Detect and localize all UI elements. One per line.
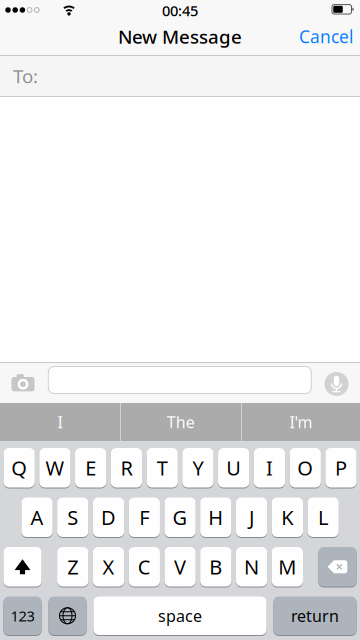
button[interactable]: U xyxy=(218,447,249,488)
staticText: I xyxy=(57,411,62,433)
button[interactable]: J xyxy=(236,497,267,537)
staticText: O xyxy=(297,454,313,481)
staticText: L xyxy=(318,504,328,531)
staticText: B xyxy=(209,553,222,580)
staticText: Z xyxy=(67,553,78,580)
button[interactable]: Y xyxy=(182,447,214,488)
staticText: X xyxy=(103,553,115,580)
staticText: S xyxy=(67,504,78,531)
button[interactable]: W xyxy=(39,447,71,488)
button[interactable]: V xyxy=(164,546,196,587)
button[interactable]: space xyxy=(93,596,267,635)
button[interactable]: Next Keyboard xyxy=(48,596,87,635)
button[interactable]: K xyxy=(272,497,303,537)
button[interactable]: E xyxy=(75,447,106,488)
button[interactable]: I xyxy=(1,403,119,441)
button[interactable]: S xyxy=(57,497,88,537)
button[interactable]: Delete xyxy=(318,546,357,587)
button[interactable]: Take Photo xyxy=(11,373,34,391)
button[interactable]: To xyxy=(0,56,360,96)
button[interactable]: X xyxy=(93,546,124,587)
staticText: G xyxy=(173,504,188,531)
staticText: J xyxy=(249,504,254,531)
button[interactable]: Cancel xyxy=(299,25,353,48)
button[interactable]: Z xyxy=(57,546,88,587)
staticText: C xyxy=(138,553,151,580)
staticText: T xyxy=(157,454,168,481)
staticText: U xyxy=(226,454,241,481)
staticText: To: xyxy=(13,64,38,88)
button[interactable]: T xyxy=(146,447,178,488)
staticText: P xyxy=(335,454,347,481)
staticText: M xyxy=(278,553,296,580)
button[interactable]: C xyxy=(129,546,160,587)
button[interactable]: Shift xyxy=(3,546,42,587)
staticText: return xyxy=(291,605,339,626)
button[interactable]: P xyxy=(325,447,357,488)
staticText: New Message xyxy=(118,24,242,49)
staticText: space xyxy=(158,605,202,626)
button[interactable]: Q xyxy=(3,447,35,488)
button[interactable]: R xyxy=(111,447,142,488)
staticText: W xyxy=(45,454,64,481)
button[interactable]: A xyxy=(21,497,53,537)
button[interactable]: The xyxy=(122,403,240,441)
staticText: Q xyxy=(11,454,27,481)
button[interactable]: Record Audio xyxy=(324,372,348,396)
staticText: Y xyxy=(192,454,203,481)
staticText: A xyxy=(30,504,43,531)
button[interactable]: 123 xyxy=(3,596,42,635)
staticText: 123 xyxy=(10,606,34,625)
staticText: 00:45 xyxy=(162,1,198,20)
staticText: I xyxy=(266,454,273,481)
button[interactable]: L xyxy=(307,497,339,537)
staticText: N xyxy=(244,553,259,580)
button[interactable]: M xyxy=(272,546,303,587)
button[interactable]: I'm xyxy=(242,403,360,441)
staticText: F xyxy=(139,504,149,531)
button[interactable]: return xyxy=(273,596,357,635)
staticText: I'm xyxy=(289,411,312,433)
staticText: E xyxy=(85,454,96,481)
button[interactable]: B xyxy=(200,546,231,587)
staticText: D xyxy=(101,504,116,531)
button[interactable]: F xyxy=(129,497,160,537)
button[interactable]: O xyxy=(290,447,321,488)
staticText: R xyxy=(120,454,132,481)
button[interactable]: D xyxy=(93,497,124,537)
staticText: The xyxy=(167,411,195,433)
staticText: H xyxy=(208,504,223,531)
button[interactable]: Message xyxy=(48,366,311,393)
staticText: Cancel xyxy=(299,25,353,48)
button[interactable]: N xyxy=(236,546,267,587)
staticText: V xyxy=(174,553,186,580)
button[interactable]: I xyxy=(254,447,285,488)
button[interactable]: H xyxy=(200,497,231,537)
staticText: K xyxy=(281,504,293,531)
button[interactable]: G xyxy=(164,497,196,537)
